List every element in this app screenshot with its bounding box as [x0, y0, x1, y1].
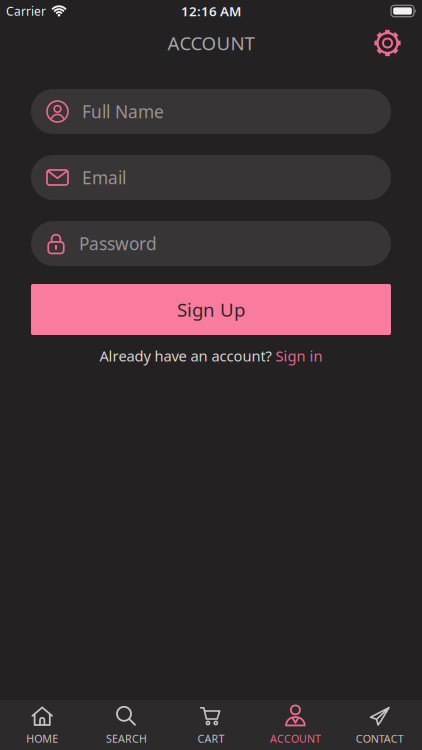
button[interactable]: CONTACT: [338, 700, 422, 750]
staticText: Sign in: [275, 346, 322, 365]
button[interactable]: Password: [31, 221, 391, 266]
button[interactable]: Full Name: [31, 89, 391, 134]
staticText: Password: [79, 232, 157, 255]
staticText: CART: [197, 731, 224, 746]
button[interactable]: Sign in: [275, 346, 322, 365]
staticText: Email: [82, 166, 126, 189]
staticText: SEARCH: [106, 731, 147, 746]
staticText: Sign Up: [177, 297, 245, 322]
button[interactable]: Email: [31, 155, 391, 200]
staticText: Carrier: [6, 3, 46, 19]
staticText: ACCOUNT: [270, 731, 321, 746]
staticText: ACCOUNT: [167, 31, 254, 55]
button[interactable]: ACCOUNT: [253, 700, 338, 750]
button[interactable]: Settings: [374, 29, 422, 56]
staticText: 12:16 AM: [181, 2, 241, 20]
button[interactable]: Sign Up: [31, 284, 391, 335]
button[interactable]: HOME: [0, 700, 84, 750]
button[interactable]: SEARCH: [84, 700, 169, 750]
button[interactable]: CART: [169, 700, 253, 750]
staticText: Already have an account?: [99, 346, 271, 365]
staticText: CONTACT: [356, 731, 404, 746]
staticText: HOME: [26, 731, 58, 746]
staticText: Full Name: [82, 100, 164, 123]
